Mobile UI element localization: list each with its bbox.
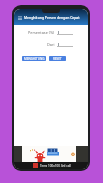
staticText: Persentase (%) (28, 30, 55, 35)
button[interactable]: Menu (17, 15, 22, 20)
button[interactable]: Terra 100x100 3rd call (14, 146, 88, 169)
button[interactable]: MENGHITUNG (22, 56, 46, 61)
button[interactable]: RESET (49, 56, 66, 61)
staticText: MENGHITUNG (24, 57, 45, 61)
staticText: Dari (47, 42, 55, 47)
button[interactable]: Input field (57, 30, 73, 35)
staticText: Terra 100x100 3rd call (40, 164, 71, 168)
button[interactable]: Input field (57, 42, 73, 47)
staticText: Menghitung Persen dengan Cepat (24, 15, 80, 20)
staticText: RESET (53, 57, 62, 61)
